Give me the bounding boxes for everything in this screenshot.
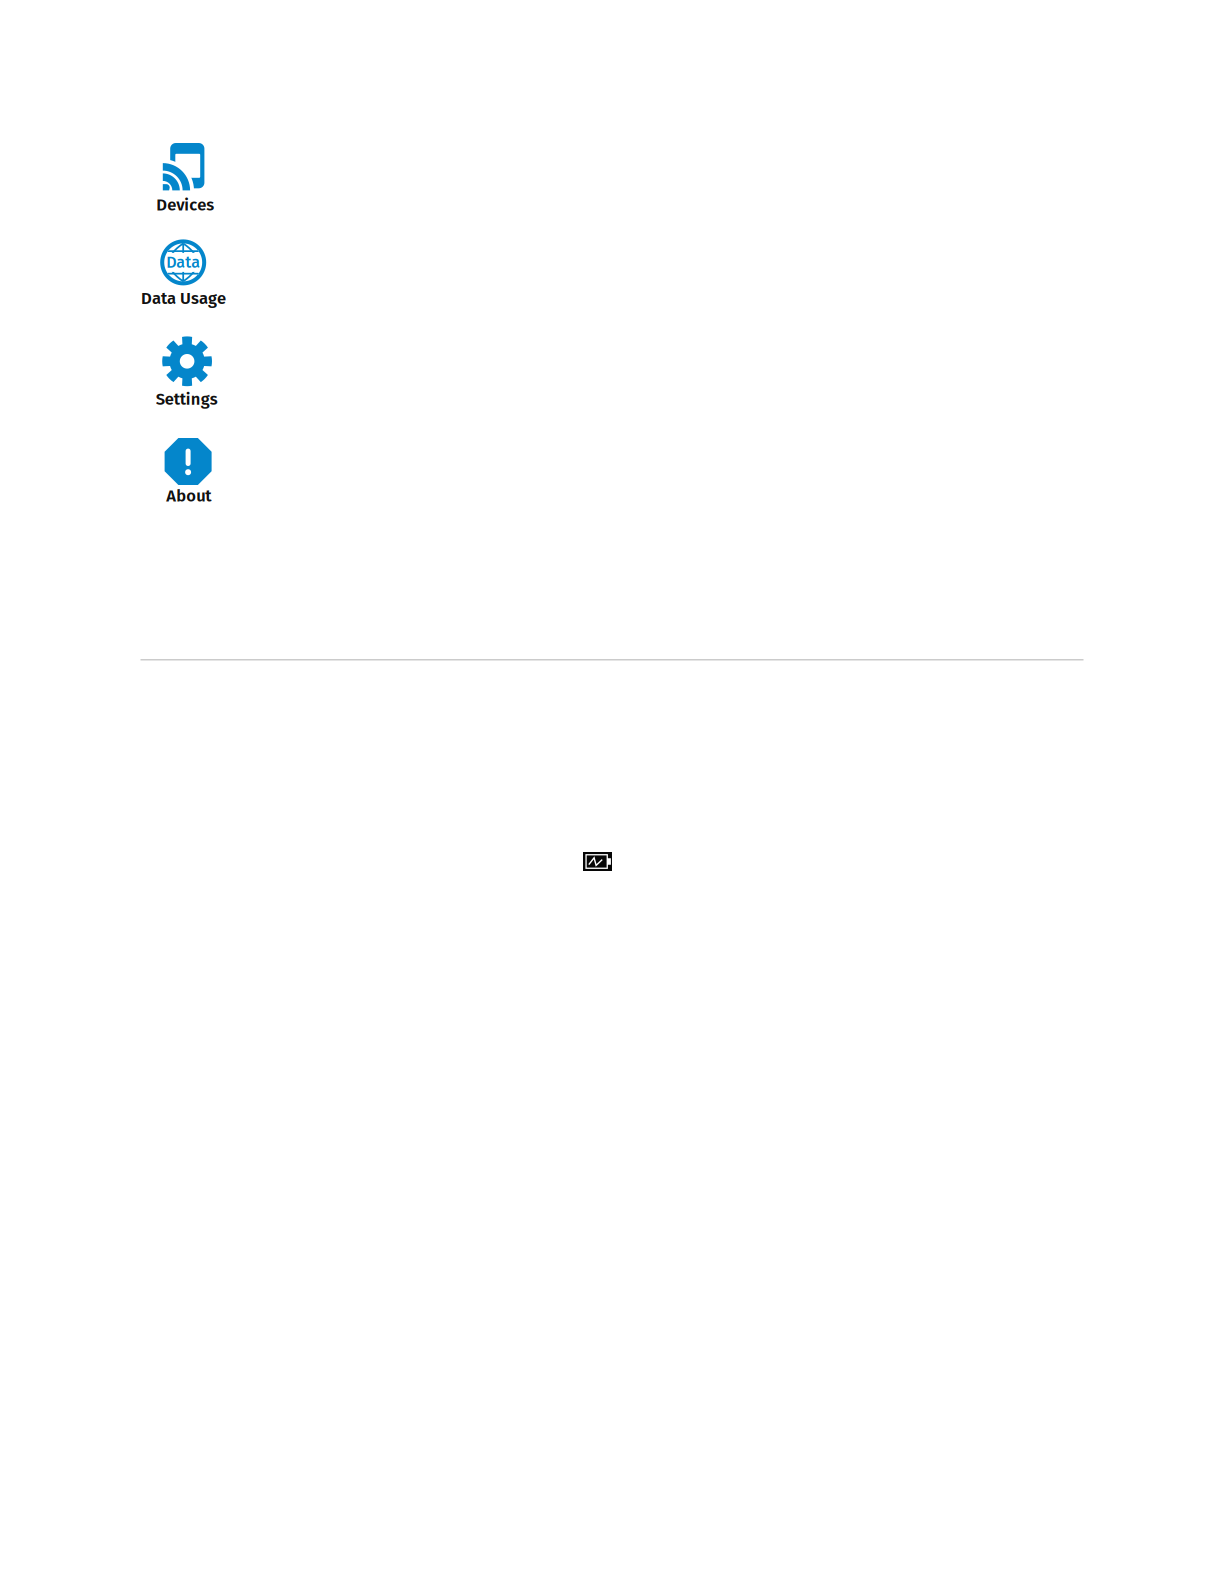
button[interactable]: Settings [153, 336, 219, 405]
button[interactable]: Devices [156, 143, 213, 210]
staticText: Settings [156, 389, 218, 409]
staticText: About [166, 486, 211, 506]
staticText: Data [166, 253, 200, 272]
staticText: Data Usage [141, 289, 226, 308]
staticText: Devices [156, 195, 214, 215]
button[interactable]: Data [143, 239, 222, 304]
button[interactable]: About [165, 438, 212, 502]
